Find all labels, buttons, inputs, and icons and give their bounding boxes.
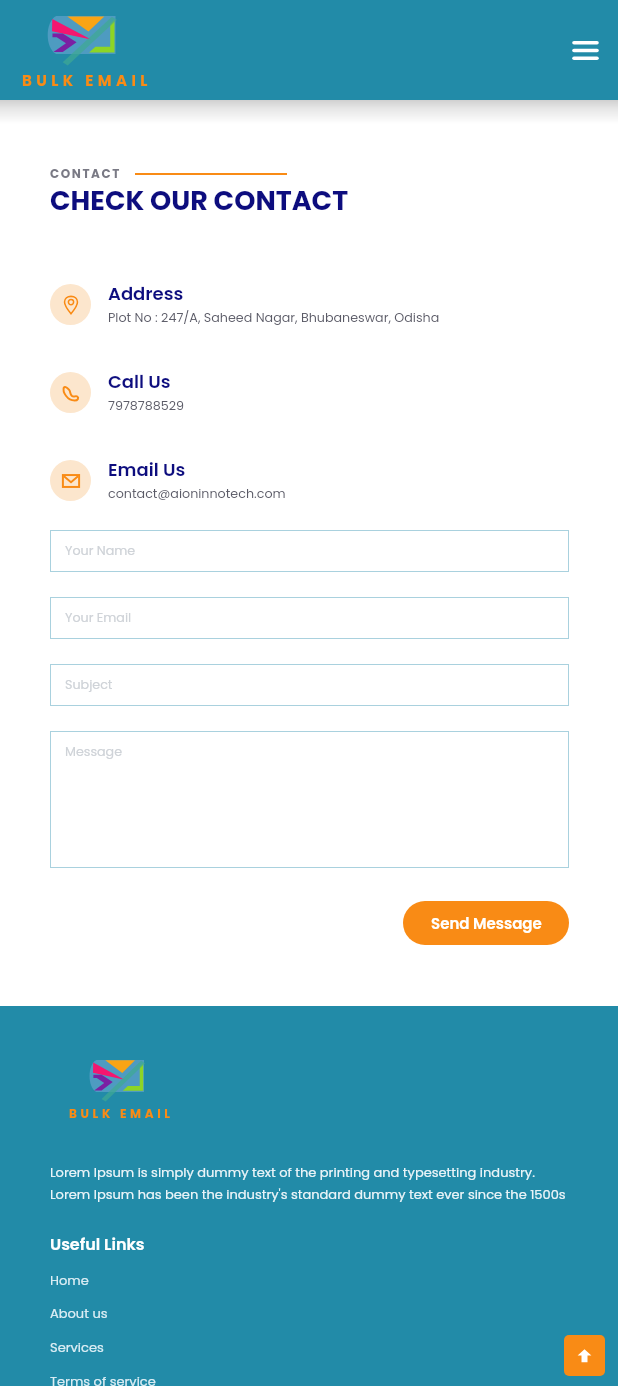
staticText: About us (50, 1304, 108, 1322)
staticText: Home (50, 1271, 89, 1289)
staticText: contact@aioninnotech.com (108, 485, 286, 503)
staticText: CHECK OUR CONTACT (50, 182, 349, 220)
button[interactable]: Address (50, 281, 569, 327)
button[interactable]: Terms of service (50, 1372, 156, 1386)
staticText: Your Email (65, 609, 132, 627)
button[interactable]: Home (50, 1271, 89, 1289)
staticText: 7978788529 (108, 397, 185, 415)
staticText: CONTACT (50, 165, 121, 182)
staticText: BULK EMAIL (69, 1105, 174, 1122)
button[interactable]: Scroll to top (564, 1335, 605, 1376)
button[interactable]: About us (50, 1304, 108, 1322)
staticText: Call Us (108, 369, 171, 394)
staticText: Services (50, 1338, 104, 1356)
button[interactable]: Your Name (50, 530, 569, 572)
staticText: Useful Links (50, 1233, 145, 1255)
staticText: Plot No : 247/A, Saheed Nagar, Bhubanesw… (108, 309, 440, 327)
button[interactable]: Send Message (403, 901, 569, 945)
button[interactable]: Subject (50, 664, 569, 706)
button[interactable]: Email Us (50, 457, 569, 503)
button[interactable]: Menu (563, 28, 607, 72)
button[interactable]: BULK EMAIL (0, 0, 160, 100)
staticText: Terms of service (50, 1372, 156, 1386)
staticText: Address (108, 281, 184, 306)
button[interactable]: Message (50, 731, 569, 868)
button[interactable]: Your Email (50, 597, 569, 639)
staticText: BULK EMAIL (22, 70, 152, 91)
staticText: Email Us (108, 457, 186, 482)
button[interactable]: Services (50, 1338, 104, 1356)
staticText: Subject (65, 676, 113, 694)
staticText: Your Name (65, 542, 136, 560)
button[interactable]: Call Us (50, 369, 569, 415)
staticText: Message (65, 743, 123, 761)
staticText: Send Message (431, 913, 542, 934)
staticText: Lorem Ipsum is simply dummy text of the … (50, 1163, 566, 1204)
